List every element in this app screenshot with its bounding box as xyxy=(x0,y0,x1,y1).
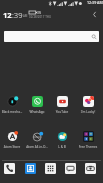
staticText: L & B xyxy=(50,145,74,149)
button[interactable]: I'm Lucky! xyxy=(76,95,100,110)
button[interactable]: Search xyxy=(4,31,99,42)
button[interactable]: Back xyxy=(89,9,100,20)
staticText: YouTube xyxy=(50,110,74,114)
button[interactable]: Messages xyxy=(65,163,76,174)
button[interactable]: WhatsApp xyxy=(25,95,49,110)
button[interactable]: Atom All-in-O... xyxy=(25,130,49,145)
button[interactable]: Atom Store xyxy=(0,130,24,145)
staticText: Free Themes xyxy=(76,145,100,149)
button[interactable]: Free Themes xyxy=(76,130,100,145)
button[interactable]: Black mecha... xyxy=(0,95,24,110)
staticText: 3% xyxy=(37,11,42,15)
button[interactable]: Contacts xyxy=(25,163,36,174)
staticText: 12:39 AM xyxy=(87,0,103,5)
button[interactable]: Apps xyxy=(45,163,56,174)
staticText: WhatsApp xyxy=(25,110,49,114)
button[interactable]: YouTube xyxy=(50,95,74,110)
button[interactable]: Camera xyxy=(85,163,96,174)
staticText: 02/28/2017 THU xyxy=(29,15,51,19)
staticText: AM xyxy=(23,14,28,18)
staticText: :39 xyxy=(12,10,23,20)
staticText: Atom Store xyxy=(0,145,24,149)
staticText: Black mecha... xyxy=(0,110,24,114)
button[interactable]: Phone xyxy=(4,163,15,174)
staticText: 12 xyxy=(3,10,12,20)
staticText: I'm Lucky! xyxy=(76,110,100,114)
staticText: Atom All-in-O... xyxy=(25,145,49,149)
button[interactable]: L & B xyxy=(50,130,74,145)
